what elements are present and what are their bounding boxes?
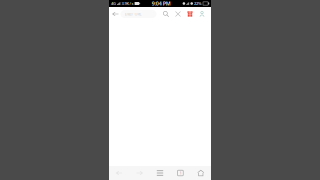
staticText: 4G bbox=[111, 1, 116, 6]
button[interactable]: Enter URL bbox=[120, 10, 156, 18]
button[interactable]: Menu bbox=[150, 166, 170, 180]
button[interactable]: Tabs bbox=[170, 166, 191, 180]
button[interactable]: Stop loading bbox=[172, 7, 184, 21]
button[interactable]: Account bbox=[196, 7, 208, 21]
button[interactable]: Back bbox=[110, 7, 120, 21]
button[interactable]: Home bbox=[191, 166, 211, 180]
staticText: 1 bbox=[179, 170, 181, 176]
staticText: 22% bbox=[194, 1, 202, 6]
button[interactable]: Search bbox=[160, 7, 172, 21]
button[interactable]: Offers bbox=[184, 7, 196, 21]
staticText: 3.9K/s bbox=[122, 1, 134, 6]
staticText: Enter URL bbox=[124, 11, 141, 17]
staticText: 9:04 PM bbox=[152, 0, 171, 7]
